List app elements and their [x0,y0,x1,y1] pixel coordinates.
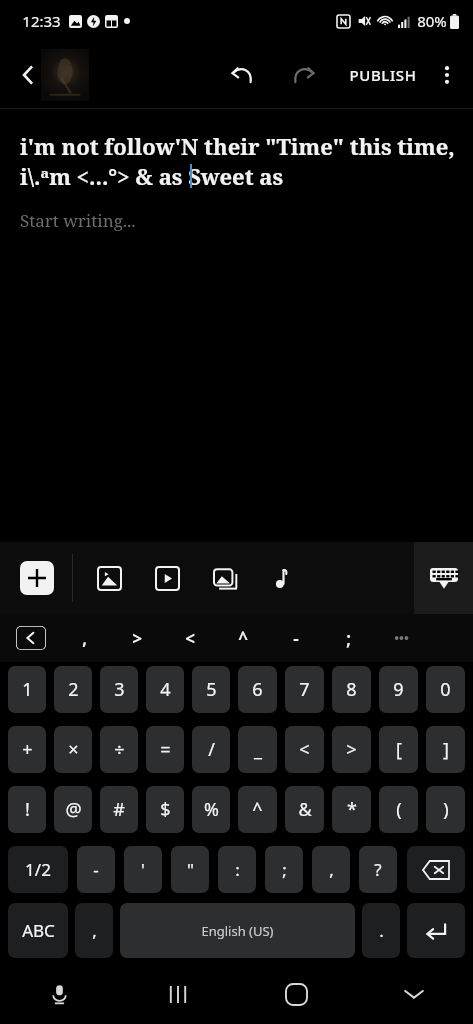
button[interactable]: ^ [216,615,269,661]
button[interactable]: < [163,615,216,661]
staticText: × [68,737,79,762]
staticText: 12:33 [22,11,61,31]
staticText: 0 [440,677,451,702]
button[interactable]: Back [6,53,50,97]
button[interactable]: ABC [8,903,68,958]
button[interactable]: Insert gallery [203,556,247,600]
button[interactable]: 2 [54,666,92,713]
button[interactable]: , [75,903,113,958]
staticText: : [235,858,240,881]
staticText: ••• [394,629,409,647]
staticText: , [329,858,334,881]
button[interactable]: . [362,903,400,958]
button[interactable]: Home [237,964,355,1024]
staticText: ; [346,627,351,650]
staticText: $ [160,797,171,822]
button[interactable]: % [192,786,230,833]
button[interactable]: Backspace [407,846,465,893]
button[interactable]: Add block [20,561,54,595]
button[interactable]: 1/2 [8,846,68,893]
staticText: ] [443,737,449,762]
staticText: - [293,627,299,650]
staticText: [ [396,737,402,762]
staticText: ^ [238,627,248,650]
button[interactable]: ' [124,846,162,893]
staticText: < [299,737,310,762]
staticText: 3 [114,677,125,702]
button[interactable]: Close keyboard [355,964,473,1024]
button[interactable]: Enter [407,903,465,958]
button[interactable]: - [77,846,115,893]
button[interactable]: 0 [426,666,465,713]
button[interactable]: ] [426,726,465,773]
button[interactable]: 1 [8,666,46,713]
button[interactable]: , [58,615,110,661]
button[interactable]: 4 [146,666,184,713]
button[interactable]: > [332,726,371,773]
button[interactable]: [ [379,726,418,773]
staticText: 8 [346,677,357,702]
button[interactable]: Insert image [87,556,131,600]
button[interactable]: ; [322,615,375,661]
button[interactable]: Insert audio [261,556,305,600]
button[interactable]: < [285,726,324,773]
button[interactable]: / [192,726,230,773]
button[interactable]: , [312,846,350,893]
staticText: = [160,737,171,762]
button[interactable]: ^ [238,786,277,833]
button[interactable]: English (US) [120,903,355,958]
staticText: 2 [68,677,79,702]
staticText: 5 [206,677,217,702]
button[interactable]: Redo [281,52,327,98]
staticText: " [187,858,194,881]
button[interactable]: ; [265,846,303,893]
button[interactable]: * [332,786,371,833]
button[interactable]: 3 [100,666,138,713]
button[interactable]: ? [359,846,397,893]
button[interactable]: @ [54,786,92,833]
button[interactable]: Start writing... [20,209,457,232]
button[interactable]: ÷ [100,726,138,773]
button[interactable]: Recent apps [119,964,237,1024]
staticText: ! [25,797,30,822]
button[interactable]: " [171,846,209,893]
staticText: > [346,737,357,762]
button[interactable]: - [269,615,322,661]
button[interactable]: Undo [219,52,265,98]
button[interactable]: Hide keyboard [414,542,473,614]
button[interactable]: PUBLISH [341,53,425,97]
button[interactable]: = [146,726,184,773]
button[interactable]: > [110,615,163,661]
button[interactable]: # [100,786,138,833]
staticText: % [204,797,219,822]
button[interactable]: $ [146,786,184,833]
staticText: ? [374,858,382,881]
button[interactable]: Insert video [145,556,189,600]
staticText: ) [443,797,449,822]
button[interactable]: Voice input [0,964,119,1024]
staticText: 1/2 [25,858,51,881]
button[interactable]: ( [379,786,418,833]
button[interactable]: & [285,786,324,833]
button[interactable]: Cover image [41,49,89,101]
button[interactable]: ! [8,786,46,833]
button[interactable]: × [54,726,92,773]
staticText: Start writing... [20,209,136,232]
staticText: i'm not follow'N their "Time" this time,… [20,131,457,191]
button[interactable]: More options [425,53,469,97]
button[interactable]: ) [426,786,465,833]
staticText: _ [254,737,262,762]
button[interactable]: 8 [332,666,371,713]
button[interactable]: 6 [238,666,277,713]
staticText: , [92,919,97,942]
staticText: ABC [22,919,55,942]
button[interactable]: _ [238,726,277,773]
button[interactable]: 5 [192,666,230,713]
button[interactable]: 7 [285,666,324,713]
button[interactable]: + [8,726,46,773]
button[interactable]: : [218,846,256,893]
button[interactable]: Previous [16,626,46,650]
button[interactable]: 9 [379,666,418,713]
staticText: ^ [252,797,263,822]
button[interactable]: More symbols [375,615,428,661]
